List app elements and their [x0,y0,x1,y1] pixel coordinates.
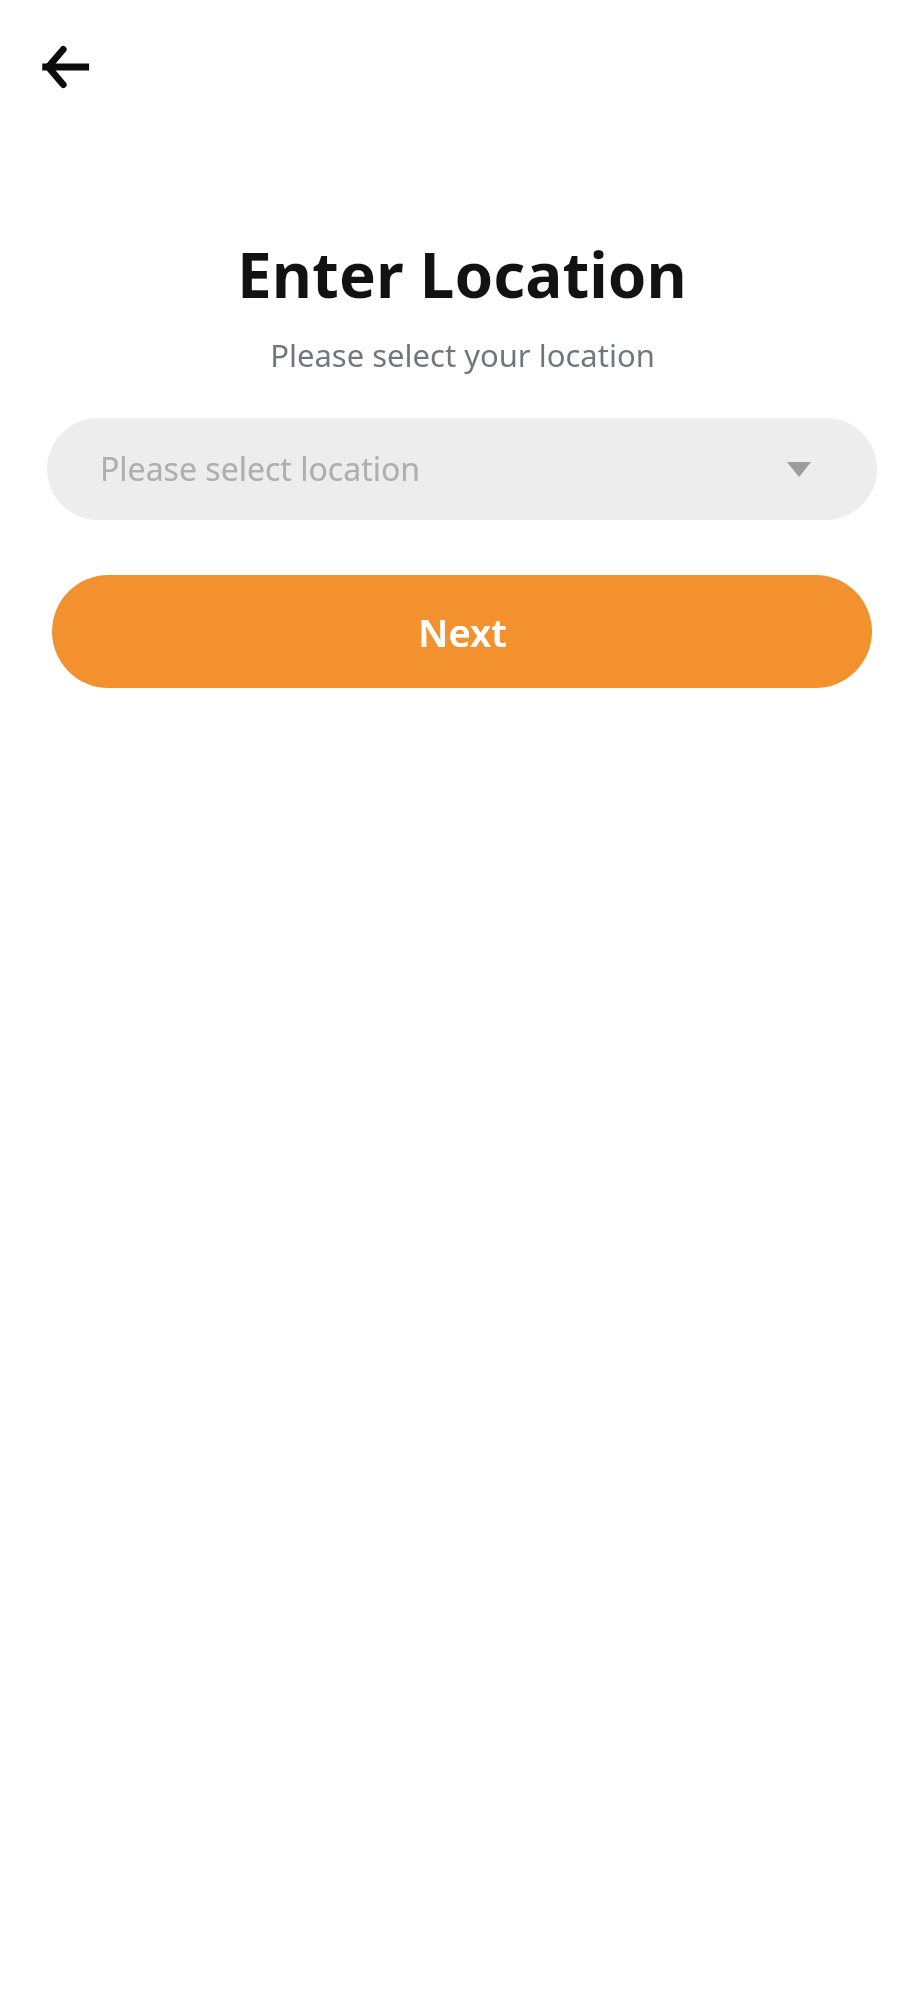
staticText: Next [418,606,507,658]
button[interactable]: Next [52,575,872,688]
staticText: Please select location [100,447,421,491]
staticText: Enter Location [237,232,687,316]
button[interactable]: Back [28,30,102,104]
staticText: Please select your location [270,334,655,376]
button[interactable]: Please select location [47,418,877,520]
